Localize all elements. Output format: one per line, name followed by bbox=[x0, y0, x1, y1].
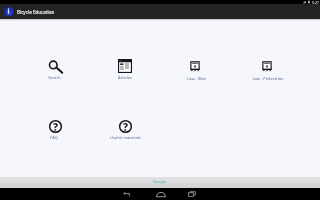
staticText: Law - Pedestrian bbox=[252, 76, 284, 81]
button[interactable]: Law - Pedestrian bbox=[238, 55, 298, 79]
staticText: ? bbox=[123, 120, 129, 133]
staticText: Bicycle Education bbox=[17, 9, 55, 15]
staticText: ? bbox=[53, 120, 59, 133]
staticText: Articles bbox=[118, 75, 132, 80]
staticText: 5:27 bbox=[312, 0, 319, 4]
button[interactable]: Back bbox=[114, 188, 140, 200]
button[interactable]: Google bbox=[145, 178, 175, 185]
staticText: FAQ bbox=[50, 135, 58, 140]
button[interactable]: Recents bbox=[179, 188, 205, 200]
button[interactable]: Articles bbox=[95, 55, 155, 79]
button[interactable]: Search bbox=[24, 55, 84, 79]
staticText: Google bbox=[153, 179, 167, 184]
button[interactable]: ? bbox=[95, 115, 155, 139]
staticText: Useful materials bbox=[110, 135, 141, 140]
button[interactable]: Home bbox=[148, 188, 174, 200]
button[interactable]: Law - Bike bbox=[166, 55, 226, 79]
staticText: Search bbox=[48, 75, 61, 80]
staticText: Law - Bike bbox=[187, 76, 206, 81]
button[interactable]: ? bbox=[24, 115, 84, 139]
